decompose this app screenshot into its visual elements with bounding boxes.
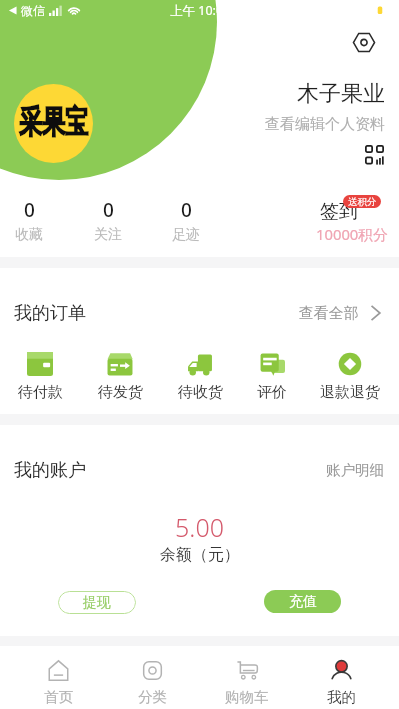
button[interactable]: 我的账户 [14, 454, 384, 486]
button[interactable]: 提现 [58, 591, 136, 614]
staticText: 查看编辑个人资料 [265, 115, 385, 134]
staticText: 查看全部 [299, 304, 359, 323]
button[interactable]: 待付款 [5, 352, 75, 404]
staticText: 0 [103, 197, 114, 223]
staticText: 上午 10:04 [170, 2, 231, 19]
staticText: 待发货 [98, 383, 143, 402]
staticText: 收藏 [15, 226, 43, 244]
staticText: 首页 [44, 688, 73, 706]
staticText: 木子果业 [297, 80, 385, 108]
staticText: 微信 [21, 3, 45, 18]
staticText: 采果宝 [19, 102, 88, 142]
staticText: 签到 [320, 200, 358, 224]
staticText: 0 [24, 197, 35, 223]
button[interactable]: QR code [365, 145, 384, 165]
button[interactable]: 充值 [264, 590, 341, 613]
button[interactable]: 木子果业 [0, 80, 385, 134]
staticText: 足迹 [172, 226, 200, 244]
button[interactable]: Settings [353, 32, 375, 53]
button[interactable]: 0 [0, 197, 59, 245]
staticText: 充值 [289, 593, 317, 611]
staticText: 0 [181, 197, 192, 223]
staticText: 我的账户 [14, 459, 86, 482]
staticText: 评价 [257, 383, 287, 402]
staticText: 10000积分 [316, 224, 388, 244]
button[interactable]: 我的订单 [14, 297, 381, 329]
button[interactable]: 0 [156, 197, 216, 245]
staticText: 待付款 [18, 383, 63, 402]
staticText: 5.00 [175, 510, 224, 544]
staticText: 购物车 [225, 688, 269, 706]
staticText: 送积分 [348, 196, 377, 208]
staticText: 退款退货 [320, 383, 380, 402]
staticText: 我的订单 [14, 302, 86, 325]
staticText: 提现 [83, 594, 111, 612]
button[interactable]: 签到 [310, 192, 390, 248]
staticText: 分类 [138, 688, 167, 706]
staticText: 余额（元） [160, 545, 240, 565]
button[interactable]: 采果宝 [14, 84, 93, 163]
button[interactable]: 待发货 [85, 352, 155, 404]
staticText: 我的 [327, 688, 356, 706]
button[interactable]: 购物车 [207, 646, 287, 709]
staticText: 关注 [94, 226, 122, 244]
button[interactable]: 评价 [237, 352, 307, 404]
button[interactable]: 我的 [301, 646, 381, 709]
button[interactable]: 0 [78, 197, 138, 245]
staticText: 待收货 [178, 383, 223, 402]
button[interactable]: 待收货 [165, 352, 235, 404]
button[interactable]: 分类 [112, 646, 192, 709]
button[interactable]: 退款退货 [315, 352, 385, 404]
button[interactable]: 首页 [18, 646, 98, 709]
staticText: 账户明细 [326, 461, 384, 479]
